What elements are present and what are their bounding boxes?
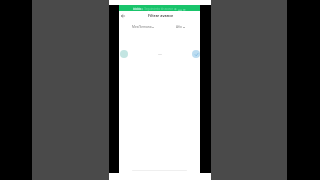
button[interactable]: Previous bbox=[120, 50, 128, 58]
staticText: Mes/Semana bbox=[132, 25, 152, 29]
staticText: Filtrar avance bbox=[148, 13, 174, 18]
staticText: — bbox=[158, 51, 162, 56]
staticText: Año bbox=[176, 25, 182, 29]
button[interactable]: Next bbox=[192, 50, 200, 58]
button[interactable]: Back bbox=[119, 12, 127, 20]
button[interactable]: Mes/Semana bbox=[132, 25, 153, 30]
button[interactable]: Año bbox=[176, 25, 187, 30]
staticText: 10:03 ● Seguimiento de avance ● ▃▃ ▄ bbox=[133, 7, 186, 11]
